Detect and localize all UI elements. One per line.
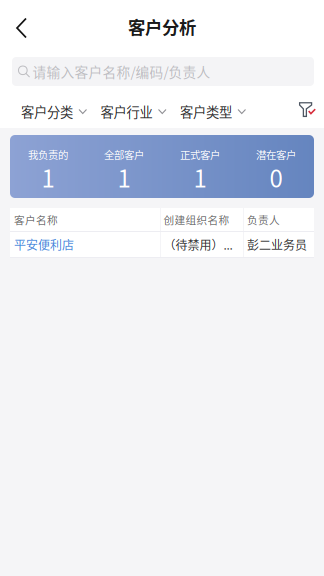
button[interactable]: 平安便利店 [10,232,314,257]
button[interactable]: Filter [293,100,315,122]
button[interactable]: 客户行业 [100,95,180,128]
staticText: 平安便利店 [14,236,74,253]
staticText: 1 [117,160,130,194]
staticText: （待禁用）... [163,236,232,253]
staticText: 正式客户 [180,147,220,162]
staticText: 客户名称 [14,212,58,227]
staticText: 全部客户 [104,147,144,162]
staticText: 1 [41,160,54,194]
button[interactable]: Back [9,10,34,45]
button[interactable]: 客户类型 [180,95,245,128]
staticText: 负责人 [247,212,280,227]
staticText: 客户分类 [21,102,73,121]
staticText: 彭二业务员 [247,236,307,253]
staticText: 请输入客户名称/编码/负责人 [32,62,210,81]
staticText: 1 [193,160,206,194]
staticText: 客户行业 [100,102,152,121]
staticText: 创建组织名称 [163,212,229,227]
button[interactable]: 请输入客户名称/编码/负责人 [12,57,314,86]
button[interactable]: 客户分类 [21,95,100,128]
staticText: 客户类型 [180,102,232,121]
staticText: 我负责的 [28,147,68,162]
staticText: 0 [269,160,282,194]
staticText: 客户分析 [128,14,196,39]
staticText: 潜在客户 [256,147,296,162]
